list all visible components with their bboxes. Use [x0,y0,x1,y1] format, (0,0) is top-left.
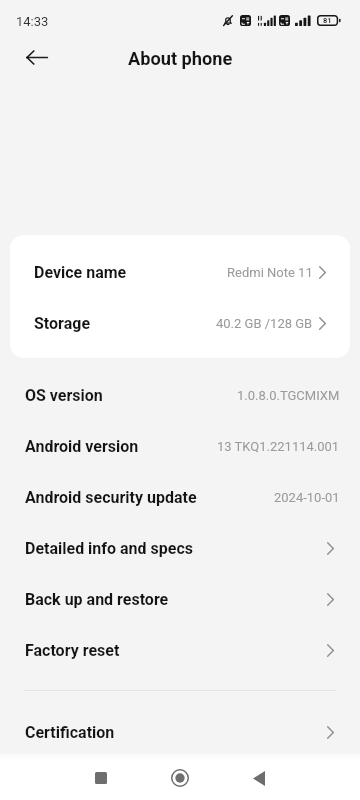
button[interactable]: Device name [10,247,350,298]
staticText: 40.2 GB /128 GB [216,316,313,331]
staticText: Device name [34,263,127,282]
button[interactable]: Back [18,40,56,74]
staticText: OS version [25,386,103,405]
button[interactable]: Recents [78,755,124,800]
button[interactable]: Detailed info and specs [0,523,360,574]
staticText: 1.0.8.0.TGCMIXM [237,388,340,403]
staticText: 81 [323,16,332,25]
staticText: Redmi Note 11 [227,265,313,280]
button[interactable]: Storage [10,298,350,349]
staticText: Android version [25,437,139,456]
button[interactable]: Certification [0,707,360,758]
staticText: Storage [34,314,91,333]
button[interactable]: Android security update [0,472,360,523]
staticText: Certification [25,723,115,742]
button[interactable]: Home [157,755,203,800]
button[interactable]: OS version [0,370,360,421]
button[interactable]: Back [236,755,282,800]
button[interactable]: Back up and restore [0,574,360,625]
staticText: About phone [128,48,233,69]
staticText: Android security update [25,488,197,507]
staticText: 2024-10-01 [274,490,340,505]
staticText: Back up and restore [25,590,169,609]
button[interactable]: Android version [0,421,360,472]
button[interactable]: Factory reset [0,625,360,676]
staticText: 14:33 [16,14,49,29]
staticText: 13 TKQ1.221114.001 [217,439,340,454]
staticText: Detailed info and specs [25,539,193,558]
staticText: Factory reset [25,641,120,660]
